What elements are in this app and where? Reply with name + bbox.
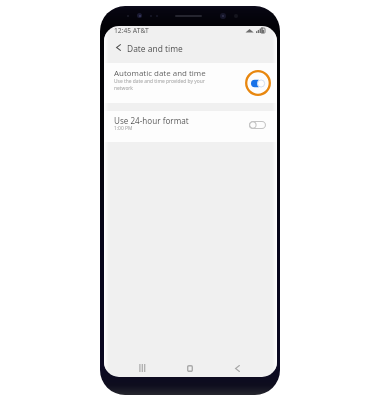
button[interactable]: Automatic date and time, on [245, 70, 271, 96]
button[interactable]: Home [180, 359, 200, 377]
staticText: Date and time [127, 43, 183, 54]
button[interactable]: Use 24-hour format [104, 111, 277, 142]
staticText: Use 24-hour format [114, 115, 189, 126]
staticText: 1:00 PM [114, 125, 133, 132]
button[interactable]: Back [227, 359, 247, 377]
staticText: Use the date and time provided by your n… [114, 78, 209, 92]
button[interactable]: Use 24-hour format, off [246, 118, 269, 132]
button[interactable]: Navigate up [110, 39, 126, 55]
staticText: Automatic date and time [114, 68, 206, 79]
button[interactable]: Recent apps [132, 359, 152, 377]
button[interactable]: Automatic date and time [104, 63, 277, 103]
staticText: 12:45 AT&T [114, 26, 149, 35]
